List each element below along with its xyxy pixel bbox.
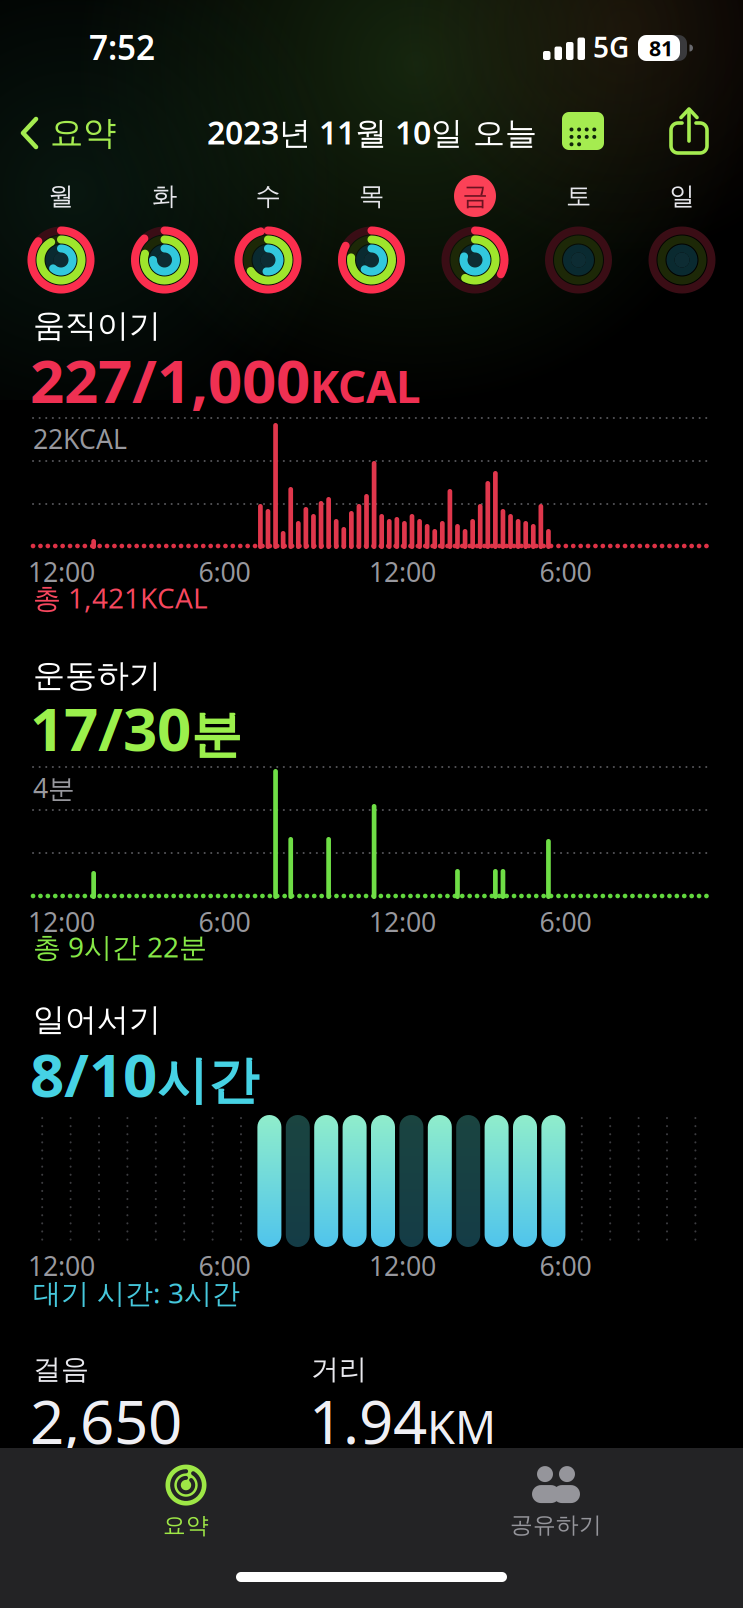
- staticText: 목: [359, 180, 384, 211]
- staticText: 227/1,000KCAL: [30, 340, 421, 420]
- staticText: 7:52: [89, 25, 155, 69]
- button[interactable]: 공유: [671, 108, 707, 153]
- button[interactable]: 수: [233, 173, 303, 295]
- staticText: 4분: [33, 770, 75, 805]
- button[interactable]: 월: [26, 173, 96, 295]
- staticText: 총 1,421KCAL: [33, 579, 208, 616]
- staticText: 요약: [163, 1512, 209, 1539]
- staticText: 6:00: [198, 904, 250, 939]
- staticText: 월: [48, 180, 73, 211]
- staticText: 6:00: [539, 554, 591, 589]
- staticText: 5G: [593, 28, 629, 66]
- staticText: 17/30분: [30, 688, 242, 768]
- staticText: 총 9시간 22분: [33, 928, 207, 965]
- staticText: 일: [669, 180, 694, 211]
- staticText: 12:00: [28, 904, 95, 939]
- staticText: 요약: [50, 112, 116, 153]
- staticText: 움직이기: [33, 306, 161, 345]
- staticText: 6:00: [539, 1248, 591, 1283]
- button[interactable]: 화: [129, 173, 199, 295]
- button[interactable]: 요약: [163, 1465, 209, 1539]
- staticText: 1.94KM: [309, 1381, 496, 1461]
- staticText: 12:00: [369, 904, 436, 939]
- staticText: 운동하기: [33, 656, 161, 695]
- button[interactable]: 토: [543, 173, 613, 295]
- button[interactable]: 공유하기: [510, 1465, 602, 1539]
- staticText: 대기 시간: 3시간: [33, 1274, 240, 1311]
- staticText: 금: [462, 180, 487, 211]
- staticText: 거리: [311, 1352, 367, 1386]
- staticText: 6:00: [198, 1248, 250, 1283]
- staticText: 22KCAL: [33, 421, 127, 456]
- staticText: 2,650: [30, 1381, 182, 1461]
- button[interactable]: 금: [440, 173, 510, 295]
- button[interactable]: 목: [336, 173, 406, 295]
- staticText: 6:00: [539, 904, 591, 939]
- staticText: 12:00: [28, 1248, 95, 1283]
- staticText: 화: [152, 180, 177, 211]
- button[interactable]: 일: [647, 173, 717, 295]
- staticText: 수: [255, 180, 280, 211]
- staticText: 8/10시간: [30, 1034, 259, 1114]
- staticText: 81: [649, 34, 673, 62]
- staticText: 토: [566, 180, 591, 211]
- staticText: 12:00: [28, 554, 95, 589]
- button[interactable]: 요약: [20, 110, 116, 156]
- staticText: 공유하기: [510, 1511, 602, 1539]
- button[interactable]: 달력: [562, 112, 604, 150]
- staticText: 6:00: [198, 554, 250, 589]
- staticText: 일어서기: [33, 1000, 161, 1039]
- staticText: 걸음: [33, 1352, 89, 1386]
- staticText: 12:00: [369, 1248, 436, 1283]
- staticText: 12:00: [369, 554, 436, 589]
- staticText: 2023년 11월 10일 오늘: [207, 111, 537, 153]
